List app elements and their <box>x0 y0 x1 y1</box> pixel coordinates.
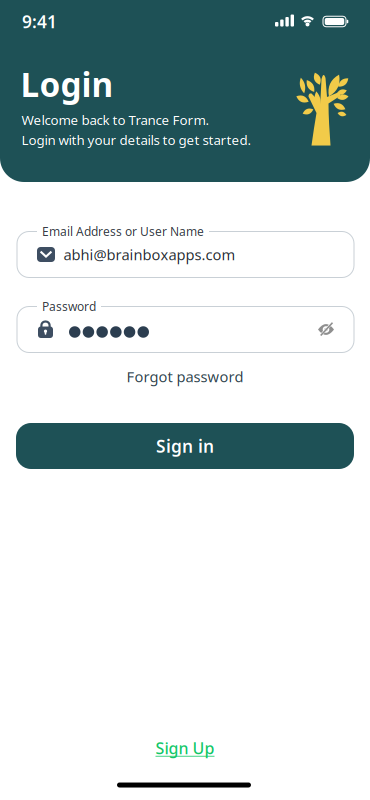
button[interactable]: Password <box>17 306 354 352</box>
staticText: Login <box>20 62 113 106</box>
button[interactable]: Sign in <box>16 423 354 469</box>
staticText: Email Address or User Name <box>42 223 204 239</box>
staticText: 9:41 <box>22 10 57 33</box>
button[interactable]: Show password <box>317 321 334 337</box>
staticText: Forgot password <box>126 367 243 386</box>
button[interactable]: Sign Up <box>155 737 214 759</box>
staticText: abhi@brainboxapps.com <box>63 245 235 264</box>
staticText: Password <box>42 298 96 314</box>
staticText: Sign Up <box>155 737 214 759</box>
button[interactable]: Forgot password <box>126 367 243 386</box>
staticText: Welcome back to Trance Form. Login with … <box>21 111 251 149</box>
staticText: Sign in <box>156 434 214 457</box>
button[interactable]: abhi@brainboxapps.com <box>17 231 354 277</box>
